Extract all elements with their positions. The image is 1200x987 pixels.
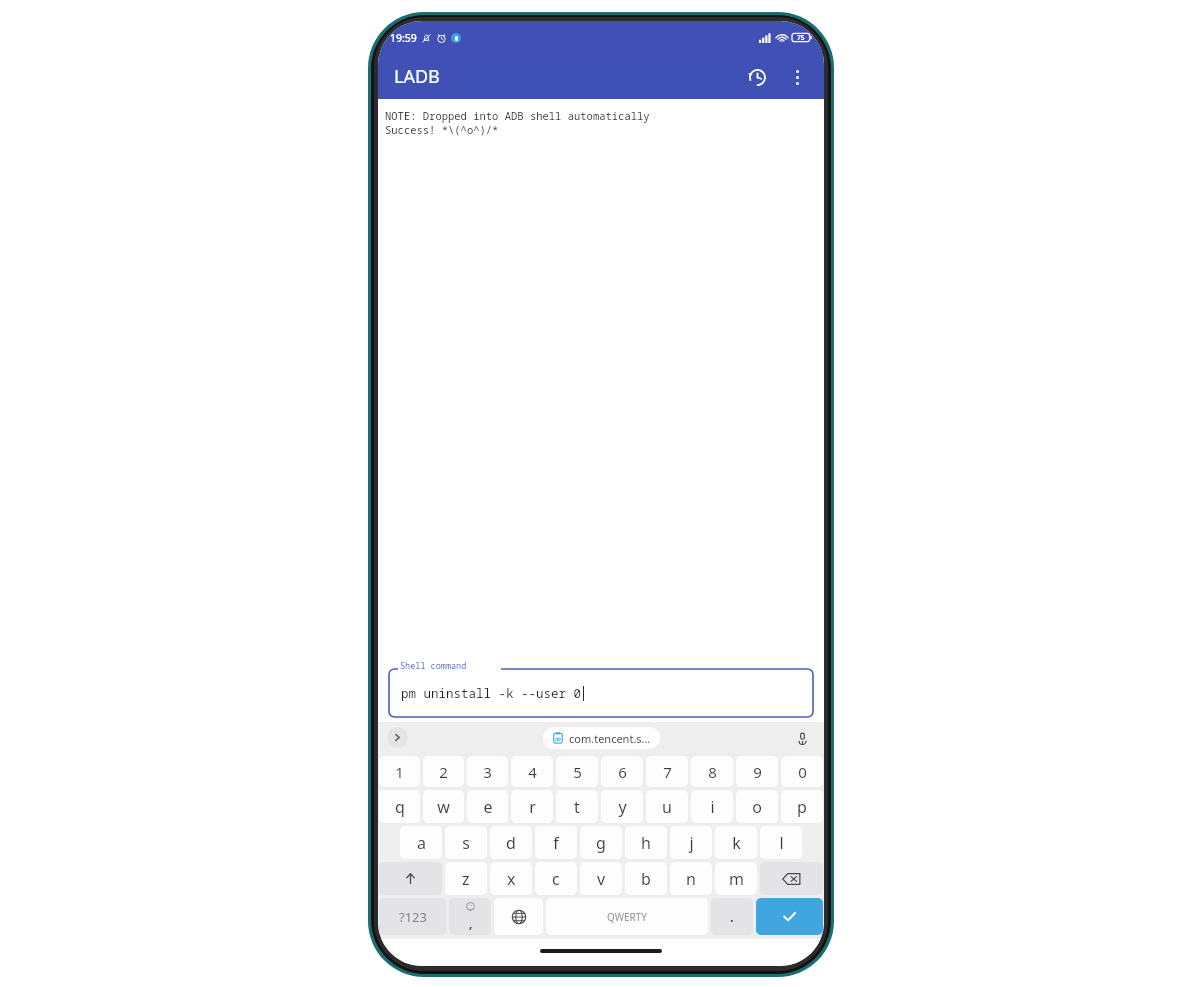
button[interactable]: k [715,826,757,859]
staticText: z [462,868,470,890]
staticText: 2 [439,762,448,782]
button[interactable]: History [737,57,777,97]
staticText: 1 [395,762,404,782]
button[interactable]: 8 [691,756,733,787]
button[interactable]: w [423,790,464,823]
staticText: r [529,796,536,818]
button[interactable]: j [670,826,712,859]
staticText: , [469,915,473,931]
button[interactable]: u [646,790,688,823]
staticText: h [641,832,651,854]
button[interactable]: 7 [646,756,688,787]
staticText: 3 [483,762,492,782]
button[interactable]: x [490,862,532,895]
staticText: a [417,832,426,854]
staticText: QWERTY [607,910,648,924]
button[interactable]: r [511,790,553,823]
button[interactable]: 6 [601,756,643,787]
staticText: s [462,832,470,854]
button[interactable]: z [445,862,487,895]
button[interactable]: c [535,862,577,895]
staticText: pm uninstall -k --user 0 [401,685,582,702]
staticText: w [437,796,450,818]
button[interactable]: 0 [781,756,823,787]
staticText: com.tencent.s… [569,731,651,746]
button[interactable]: 4 [511,756,553,787]
button[interactable]: Expand toolbar [387,727,408,748]
button[interactable]: 5 [556,756,598,787]
button[interactable]: s [445,826,487,859]
staticText: j [689,832,694,854]
staticText: o [752,796,762,818]
staticText: p [797,796,807,818]
button[interactable]: pm uninstall -k --user 0 [401,669,813,717]
button[interactable]: 2 [423,756,464,787]
staticText: Success! *\(^o^)/* [385,123,499,137]
button[interactable]: f [535,826,577,859]
staticText: 6 [618,762,627,782]
button[interactable]: Shift [379,862,442,895]
button[interactable]: a [400,826,442,859]
button[interactable]: Voice input [790,726,814,750]
staticText: v [597,868,606,890]
staticText: 19:59 [390,31,417,45]
staticText: t [574,796,580,818]
button[interactable]: l [760,826,802,859]
button[interactable]: p [781,790,823,823]
button[interactable]: y [601,790,643,823]
button[interactable]: Backspace [760,862,823,895]
button[interactable]: o [736,790,778,823]
staticText: 8 [708,762,717,782]
button[interactable]: q [379,790,420,823]
staticText: f [553,832,559,854]
staticText: b [641,868,651,890]
button[interactable]: 3 [467,756,508,787]
staticText: q [395,796,405,818]
button[interactable]: More options [777,57,817,97]
staticText: n [686,868,696,890]
staticText: 7 [663,762,672,782]
staticText: . [730,908,734,926]
staticText: x [507,868,516,890]
button[interactable]: ?123 [379,898,446,935]
staticText: Shell command [400,660,467,672]
button[interactable]: e [467,790,508,823]
staticText: NOTE: Dropped into ADB shell automatical… [385,109,650,123]
staticText: m [729,868,744,890]
staticText: LADB [394,64,440,89]
button[interactable]: v [580,862,622,895]
staticText: y [618,796,627,818]
button[interactable]: QWERTY [546,898,708,935]
button[interactable]: Change language [494,898,543,935]
button[interactable]: h [625,826,667,859]
button[interactable]: com.tencent.s… [543,727,660,749]
button[interactable]: t [556,790,598,823]
button[interactable]: d [490,826,532,859]
staticText: 9 [753,762,762,782]
staticText: g [596,832,606,854]
button[interactable]: m [715,862,757,895]
button[interactable]: . [711,898,753,935]
button[interactable]: n [670,862,712,895]
staticText: l [779,832,784,854]
staticText: c [552,868,560,890]
staticText: ?123 [399,908,427,926]
button[interactable]: g [580,826,622,859]
button[interactable]: Emoji and comma [449,898,491,935]
staticText: 5 [573,762,582,782]
button[interactable]: 1 [379,756,420,787]
staticText: 4 [528,762,537,782]
button[interactable]: 9 [736,756,778,787]
button[interactable]: Enter [756,898,823,935]
staticText: 0 [798,762,807,782]
button[interactable]: b [625,862,667,895]
staticText: k [732,832,741,854]
staticText: e [483,796,493,818]
staticText: u [662,796,672,818]
staticText: i [710,796,715,818]
staticText: d [506,832,516,854]
staticText: 75 [797,33,805,42]
button[interactable]: i [691,790,733,823]
